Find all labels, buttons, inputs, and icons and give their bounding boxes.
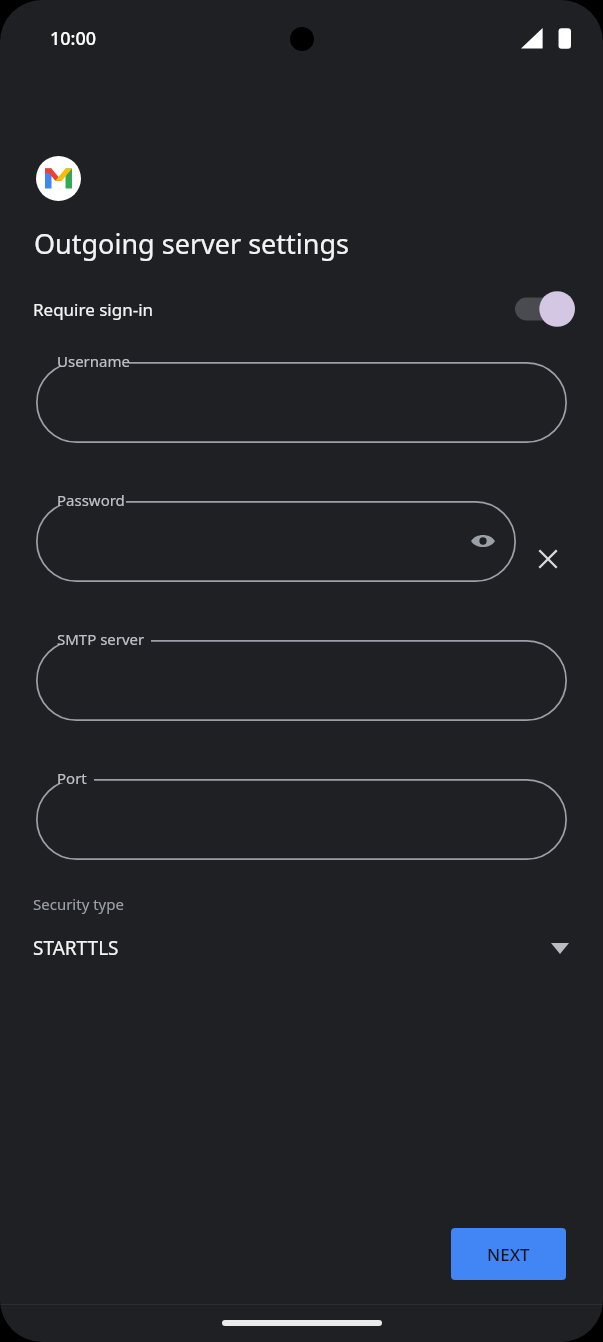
button[interactable]: Security type <box>0 894 603 963</box>
button[interactable]: Select security type <box>545 933 575 963</box>
button[interactable]: Clear password <box>526 537 570 581</box>
button[interactable] <box>36 779 567 860</box>
staticText: Security type <box>33 894 124 914</box>
staticText: SMTP server <box>57 629 145 649</box>
button[interactable] <box>36 362 567 443</box>
button[interactable]: Require sign-in <box>0 282 603 336</box>
staticText: STARTTLS <box>33 935 119 961</box>
button[interactable] <box>36 501 516 582</box>
staticText: Require sign-in <box>33 298 154 321</box>
button[interactable] <box>36 640 567 721</box>
staticText: Port <box>57 768 87 788</box>
staticText: Username <box>57 351 130 371</box>
staticText: NEXT <box>487 1243 530 1266</box>
staticText: Password <box>57 490 125 510</box>
button[interactable]: Require sign-in <box>515 290 575 328</box>
staticText: Outgoing server settings <box>34 225 350 262</box>
staticText: 10:00 <box>50 26 97 51</box>
button[interactable]: Show password <box>462 520 504 562</box>
button[interactable]: NEXT <box>451 1228 566 1280</box>
